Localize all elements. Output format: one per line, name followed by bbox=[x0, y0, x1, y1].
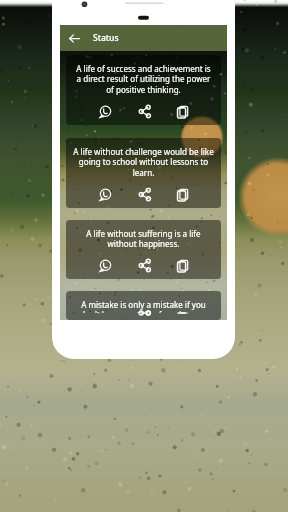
button[interactable]: A life without challenge would be like g… bbox=[66, 138, 221, 208]
button[interactable]: Share bbox=[137, 104, 151, 118]
button[interactable]: Copy bbox=[175, 187, 189, 201]
button[interactable]: Copy bbox=[175, 258, 189, 272]
staticText: A life without challenge would be like g… bbox=[73, 146, 214, 179]
button[interactable]: Share bbox=[137, 258, 151, 272]
button[interactable]: Copy bbox=[175, 104, 189, 118]
staticText: A mistake is only a mistake if you don't… bbox=[80, 299, 207, 313]
staticText: Status bbox=[93, 32, 119, 44]
button[interactable]: Back bbox=[66, 30, 83, 47]
button[interactable]: Share bbox=[137, 187, 151, 201]
button[interactable]: Share on WhatsApp bbox=[98, 187, 112, 201]
button[interactable]: A mistake is only a mistake if you don't… bbox=[66, 291, 221, 320]
button[interactable]: Share on WhatsApp bbox=[98, 258, 112, 272]
staticText: A life of success and achievement is a d… bbox=[76, 63, 211, 96]
button[interactable]: A life without suffering is a life witho… bbox=[66, 220, 221, 279]
button[interactable]: A life of success and achievement is a d… bbox=[66, 55, 221, 125]
button[interactable]: Share on WhatsApp bbox=[98, 104, 112, 118]
staticText: A life without suffering is a life witho… bbox=[86, 228, 201, 250]
